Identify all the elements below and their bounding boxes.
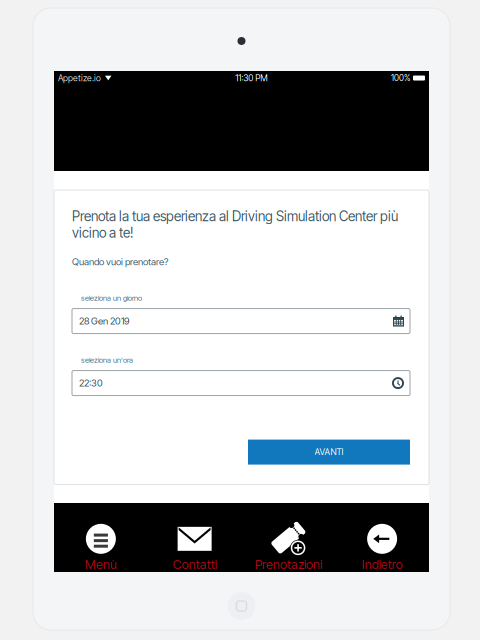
staticText: Contatti	[173, 557, 217, 572]
staticText: Indietro	[362, 557, 403, 572]
button[interactable]: Indietro	[335, 503, 429, 572]
staticText: Appetize.io	[58, 73, 101, 83]
staticText: Prenotazioni	[255, 557, 322, 572]
button[interactable]: 22:30	[72, 371, 410, 396]
button[interactable]: Prenotazioni	[241, 503, 335, 572]
staticText: AVANTI	[314, 447, 343, 457]
staticText: 11:30 PM	[235, 73, 267, 83]
staticText: 28 Gen 2019	[79, 315, 129, 327]
staticText: seleziona un'ora	[81, 356, 133, 365]
button[interactable]: 28 Gen 2019	[72, 309, 410, 334]
staticText: 100%	[391, 73, 410, 83]
button[interactable]: Contatti	[148, 503, 242, 572]
staticText: 22:30	[79, 377, 103, 389]
button[interactable]: Menù	[54, 503, 148, 572]
button[interactable]: AVANTI	[248, 440, 410, 465]
staticText: Quando vuoi prenotare?	[72, 256, 168, 267]
staticText: seleziona un giorno	[81, 293, 142, 302]
staticText: Prenota la tua esperienza al Driving Sim…	[72, 208, 398, 241]
staticText: Menù	[85, 557, 117, 572]
